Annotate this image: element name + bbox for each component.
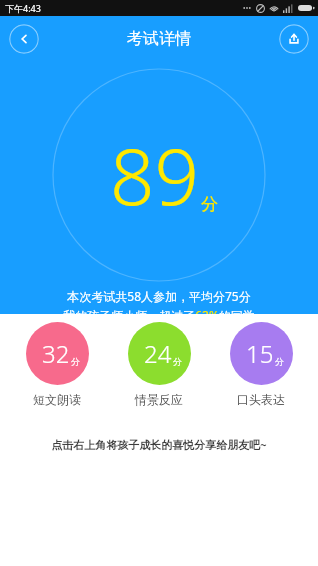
- staticText: 下午4:43: [5, 2, 41, 14]
- staticText: 24: [144, 337, 172, 370]
- button[interactable]: 15: [218, 322, 304, 407]
- staticText: 我的孩子师小师，超过了62%的同学: [0, 307, 318, 314]
- button[interactable]: 24: [116, 322, 202, 407]
- button[interactable]: Back: [9, 24, 39, 54]
- staticText: 点击右上角将孩子成长的喜悦分享给朋友吧~: [0, 437, 318, 452]
- staticText: 考试详情: [127, 29, 191, 49]
- staticText: 分: [173, 356, 182, 367]
- staticText: 15: [246, 337, 274, 370]
- button[interactable]: Share: [279, 24, 309, 54]
- button[interactable]: 32: [14, 322, 100, 407]
- staticText: 89: [110, 122, 200, 228]
- staticText: 分: [275, 356, 284, 367]
- staticText: 情景反应: [135, 392, 183, 407]
- staticText: 本次考试共58人参加，平均分75分: [0, 288, 318, 304]
- staticText: 短文朗读: [33, 392, 81, 407]
- staticText: 32: [42, 337, 70, 370]
- staticText: 分: [71, 356, 80, 367]
- staticText: 分: [201, 194, 218, 215]
- staticText: 口头表达: [237, 392, 285, 407]
